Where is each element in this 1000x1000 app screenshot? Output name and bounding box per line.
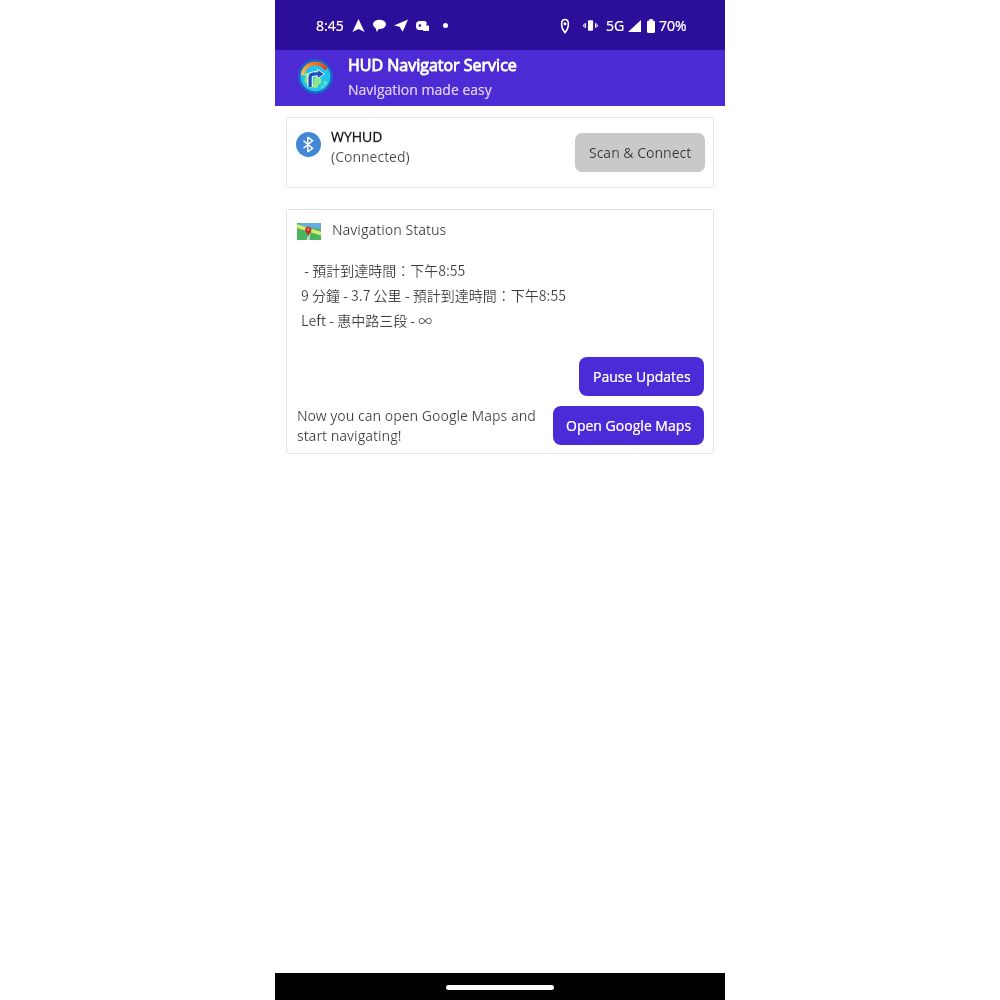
staticText: Pause Updates (593, 367, 691, 386)
staticText: Navigation made easy (348, 80, 492, 99)
staticText: Left - 惠中路三段 - ∞ (301, 310, 433, 330)
button[interactable]: Open Google Maps (553, 406, 704, 445)
staticText: 70% (659, 16, 687, 35)
other: Google Maps (297, 223, 321, 240)
staticText: (Connected) (331, 147, 410, 166)
staticText: WYHUD (331, 127, 383, 146)
staticText: 5G (606, 16, 625, 35)
staticText: 8:45 (316, 16, 344, 35)
other: Location (560, 19, 570, 33)
button[interactable]: Bluetooth (286, 117, 714, 188)
staticText: Scan & Connect (589, 143, 692, 162)
button[interactable]: Home (446, 985, 554, 990)
button[interactable]: Pause Updates (579, 357, 704, 396)
staticText: 9 分鐘 - 3.7 公里 - 預計到達時間：下午8:55 (301, 285, 566, 305)
staticText: HUD Navigator Service (348, 54, 517, 76)
button[interactable]: HUD Navigator app icon (275, 50, 725, 106)
staticText: Now you can open Google Maps and start n… (297, 406, 536, 445)
staticText: Navigation Status (332, 220, 447, 239)
other: Bluetooth (296, 132, 321, 157)
staticText: Open Google Maps (566, 416, 692, 435)
staticText: - 預計到達時間：下午8:55 (301, 260, 466, 280)
button[interactable]: Scan & Connect (575, 133, 705, 172)
other: HUD Navigator app icon (298, 59, 333, 94)
